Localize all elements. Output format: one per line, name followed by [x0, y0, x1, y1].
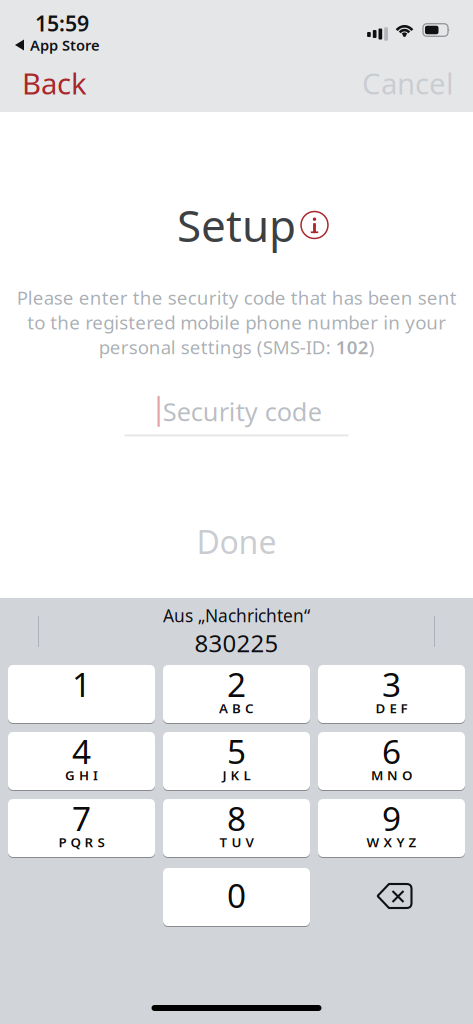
staticText: Setup — [177, 196, 296, 254]
staticText: Security code — [163, 394, 322, 428]
staticText: 15:59 — [35, 9, 89, 37]
staticText: Back — [22, 63, 87, 102]
button[interactable]: Done — [180, 514, 292, 569]
button[interactable]: 1 — [8, 665, 155, 723]
staticText: 5 — [227, 729, 246, 773]
staticText: 6 — [382, 729, 401, 773]
staticText: A B C — [219, 699, 254, 717]
button[interactable]: 9 — [318, 799, 465, 857]
staticText: M N O — [371, 766, 412, 784]
staticText: Aus „Nachrichten“ — [163, 604, 310, 627]
staticText: 2 — [227, 662, 246, 706]
staticText: App Store — [30, 35, 100, 55]
button[interactable]: Aus „Nachrichten“ — [139, 600, 334, 663]
staticText: J K L — [222, 766, 250, 784]
button[interactable]: 3 — [318, 665, 465, 723]
staticText: Please enter the security code that has … — [16, 285, 456, 359]
button[interactable]: Delete — [369, 868, 413, 926]
staticText: W X Y Z — [366, 833, 416, 851]
button[interactable]: 6 — [318, 732, 465, 790]
staticText: D E F — [375, 699, 407, 717]
staticText: 0 — [227, 873, 246, 917]
button[interactable]: Cancel — [352, 55, 473, 110]
button[interactable]: 7 — [8, 799, 155, 857]
staticText: 830225 — [194, 627, 278, 659]
staticText: G H I — [65, 766, 98, 784]
staticText: Done — [196, 520, 276, 563]
staticText: 9 — [382, 796, 401, 840]
staticText: Cancel — [362, 63, 454, 102]
staticText: 3 — [382, 662, 401, 706]
staticText: P Q R S — [58, 833, 104, 851]
staticText: T U V — [219, 833, 253, 851]
button[interactable]: 4 — [8, 732, 155, 790]
staticText: 8 — [227, 796, 246, 840]
button[interactable]: Back — [0, 55, 97, 110]
button[interactable]: 0 — [163, 868, 310, 926]
staticText: 1 — [72, 662, 91, 706]
button[interactable]: 5 — [163, 732, 310, 790]
button[interactable]: 8 — [163, 799, 310, 857]
staticText: 4 — [72, 729, 91, 773]
staticText: 7 — [72, 796, 91, 840]
button[interactable]: 2 — [163, 665, 310, 723]
button[interactable]: Information — [301, 211, 328, 238]
